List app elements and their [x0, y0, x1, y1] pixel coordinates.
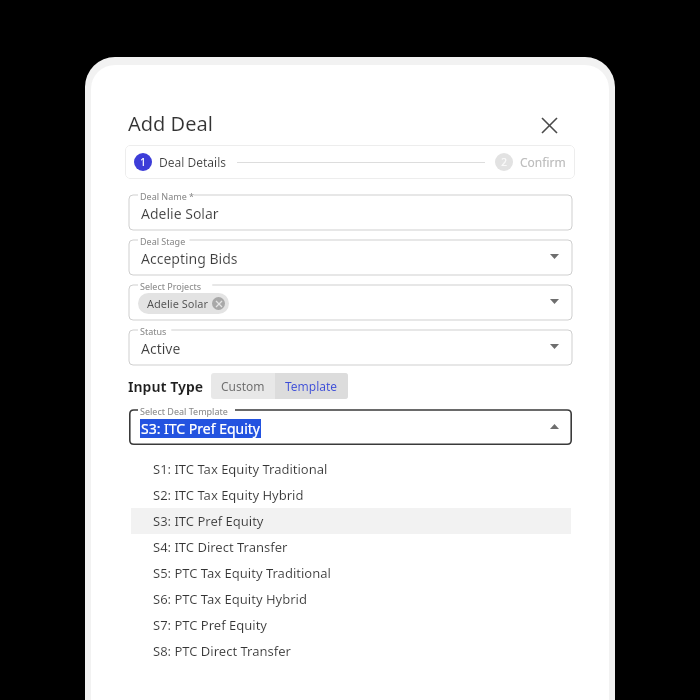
staticText: Select Projects	[140, 280, 202, 292]
staticText: Deal Name *	[140, 190, 195, 202]
button[interactable]: Template	[275, 373, 348, 399]
button[interactable]: 2	[495, 153, 566, 171]
staticText: 1	[140, 155, 146, 169]
staticText: Deal Details	[159, 154, 227, 170]
button[interactable]: S6: PTC Tax Equity Hybrid	[131, 586, 571, 612]
other: Collapse template list	[544, 418, 564, 438]
staticText: Select Deal Template	[140, 405, 228, 417]
staticText: S3: ITC Pref Equity	[153, 512, 264, 530]
staticText: Template	[285, 378, 338, 394]
button[interactable]: Custom	[211, 373, 275, 399]
staticText: Adelie Solar	[141, 204, 219, 223]
staticText: S8: PTC Direct Transfer	[153, 642, 291, 660]
staticText: S4: ITC Direct Transfer	[153, 538, 288, 556]
staticText: S6: PTC Tax Equity Hybrid	[153, 590, 307, 608]
button[interactable]: S7: PTC Pref Equity	[131, 612, 571, 638]
button[interactable]: S1: ITC Tax Equity Traditional	[131, 456, 571, 482]
button[interactable]: S4: ITC Direct Transfer	[131, 534, 571, 560]
staticText: Active	[141, 339, 181, 358]
button[interactable]: S5: PTC Tax Equity Traditional	[131, 560, 571, 586]
button[interactable]: Select Projects	[129, 280, 572, 320]
staticText: S2: ITC Tax Equity Hybrid	[153, 486, 304, 504]
staticText: 2	[501, 155, 507, 169]
staticText: S1: ITC Tax Equity Traditional	[153, 460, 328, 478]
staticText: S7: PTC Pref Equity	[153, 616, 267, 634]
staticText: Deal Stage	[140, 235, 186, 247]
button[interactable]: Status	[129, 325, 572, 365]
button[interactable]: Deal Name *	[129, 190, 572, 230]
button[interactable]: Deal Stage	[129, 235, 572, 275]
button[interactable]: S2: ITC Tax Equity Hybrid	[131, 482, 571, 508]
button[interactable]: 1	[134, 153, 227, 171]
staticText: S3: ITC Pref Equity	[141, 419, 260, 438]
button[interactable]: Open Deal Stage	[544, 248, 564, 268]
button[interactable]: Close	[531, 107, 567, 143]
staticText: Confirm	[520, 154, 566, 170]
button[interactable]: S8: PTC Direct Transfer	[131, 638, 571, 664]
staticText: S5: PTC Tax Equity Traditional	[153, 564, 331, 582]
button[interactable]: S3: ITC Pref Equity	[131, 508, 571, 534]
button[interactable]: Open Status	[544, 338, 564, 358]
other: Remove Adelie Solar	[212, 297, 225, 310]
staticText: Adelie Solar	[147, 296, 208, 311]
staticText: Accepting Bids	[141, 249, 238, 268]
staticText: Status	[140, 325, 167, 337]
button[interactable]: Open Select Projects	[544, 293, 564, 313]
button[interactable]: Adelie Solar	[138, 293, 229, 314]
staticText: Custom	[221, 378, 265, 394]
button[interactable]: Select Deal Template	[129, 405, 572, 445]
staticText: Add Deal	[128, 110, 213, 137]
staticText: Input Type	[128, 377, 204, 396]
